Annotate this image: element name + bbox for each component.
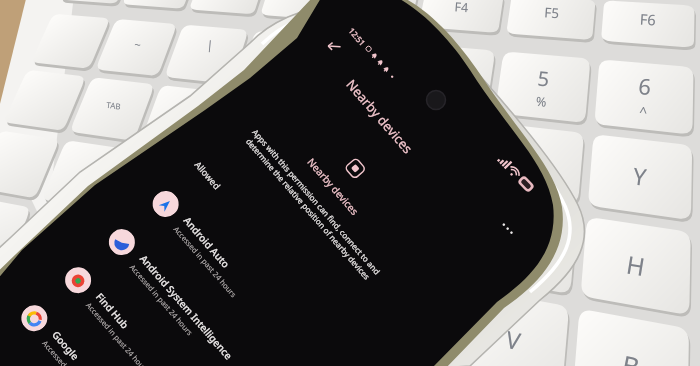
button[interactable]: Find Hub (35, 236, 275, 366)
staticText: F6 (639, 9, 656, 30)
staticText: Nearby devices (304, 155, 362, 218)
staticText: F5 (544, 3, 560, 22)
staticText: CA (81, 167, 93, 180)
staticText: Accessed in past 24 hours (128, 262, 195, 337)
staticText: | (206, 36, 214, 53)
button[interactable]: Google (0, 274, 231, 366)
staticText: H (624, 248, 648, 280)
staticText: 5 (536, 64, 551, 92)
staticText: Nearby devices (342, 76, 417, 158)
staticText: 6 (637, 71, 653, 102)
staticText: V (503, 323, 524, 355)
staticText: ^ (638, 101, 648, 121)
staticText: Find Hub (93, 290, 132, 331)
staticText: F4 (454, 0, 469, 16)
staticText: Android System Intelligence (137, 252, 236, 363)
staticText: T (526, 147, 542, 177)
staticText: Allowed (192, 158, 224, 192)
staticText: 12:51 (346, 25, 368, 48)
button[interactable]: Back (320, 32, 348, 60)
staticText: Y (631, 160, 649, 191)
staticText: B (620, 346, 643, 366)
staticText: Accessed in past 24 hours (172, 224, 239, 299)
button[interactable]: Android System Intelligence (78, 198, 319, 366)
staticText: % (441, 82, 452, 99)
staticText: % (535, 92, 548, 110)
staticText: Accessed in past 24 hours (40, 338, 107, 366)
staticText: Apps with this permission can find, conn… (242, 126, 383, 284)
staticText: Google (49, 328, 83, 363)
staticText: Android Auto (181, 214, 233, 271)
staticText: TAB (106, 99, 122, 112)
staticText: ~ (134, 36, 142, 52)
button[interactable]: Android Auto (122, 160, 363, 366)
staticText: Accessed in past 24 hours (84, 300, 151, 366)
